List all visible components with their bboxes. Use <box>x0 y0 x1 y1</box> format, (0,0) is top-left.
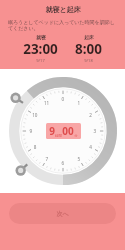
staticText: 8:00 <box>75 40 102 58</box>
staticText: 9 <box>49 124 55 138</box>
staticText: 9/17 <box>36 58 45 63</box>
staticText: 23:00 <box>23 40 58 58</box>
staticText: 就寝 <box>36 34 46 40</box>
staticText: 00 <box>62 124 74 138</box>
staticText: 起床 <box>84 34 94 40</box>
button[interactable]: 9 <box>49 124 78 138</box>
staticText: 9/18 <box>84 58 93 63</box>
staticText: 就寝と起床 <box>45 5 81 14</box>
staticText: 次へ <box>56 210 69 218</box>
staticText: 分 <box>74 134 78 138</box>
staticText: てください。 <box>8 25 39 31</box>
button[interactable]: 次へ <box>9 203 116 224</box>
staticText: 時間 <box>55 134 62 138</box>
staticText: 眠ろうとしてベッドに入っていた時間を調節し <box>8 19 115 25</box>
other: Sleep duration dial <box>7 75 119 187</box>
